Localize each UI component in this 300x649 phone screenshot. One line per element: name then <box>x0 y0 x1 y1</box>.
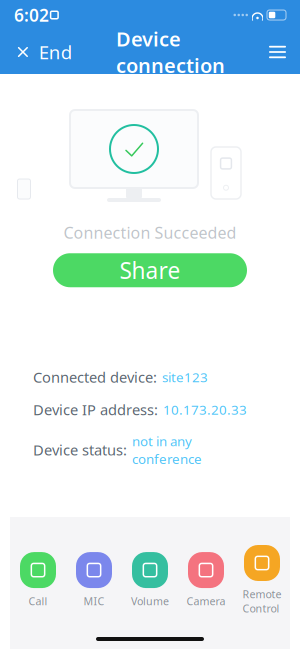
button[interactable]: Camera <box>178 552 234 608</box>
staticText: site123 <box>162 368 208 386</box>
button[interactable]: Remote Control <box>234 545 290 615</box>
staticText: Connection Succeeded <box>63 222 236 243</box>
staticText: End <box>39 40 72 64</box>
staticText: Volume <box>131 594 169 608</box>
staticText: Remote Control <box>242 587 281 615</box>
staticText: 10.173.20.33 <box>163 401 247 418</box>
button[interactable]: Share <box>53 253 247 287</box>
button[interactable]: Volume <box>122 552 178 608</box>
staticText: Device connection <box>116 25 225 78</box>
staticText: Camera <box>186 594 225 608</box>
button[interactable]: Menu <box>255 30 300 74</box>
staticText: not in any conference <box>132 432 202 468</box>
staticText: Device status: <box>33 440 127 460</box>
staticText: MIC <box>83 594 104 608</box>
button[interactable]: End <box>0 30 86 74</box>
button[interactable]: MIC <box>66 552 122 608</box>
staticText: Share <box>119 255 180 285</box>
button[interactable]: Call <box>10 552 66 608</box>
staticText: Call <box>28 594 47 608</box>
staticText: 6:02 <box>14 3 49 26</box>
staticText: Device IP address: <box>33 400 158 419</box>
staticText: Connected device: <box>33 367 157 387</box>
